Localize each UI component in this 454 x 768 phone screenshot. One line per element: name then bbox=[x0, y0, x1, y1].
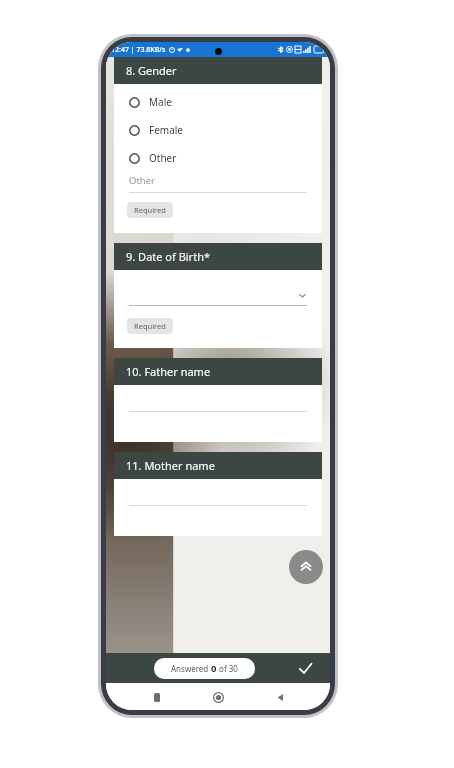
button[interactable]: Submit bbox=[293, 656, 317, 680]
button[interactable]: Recents bbox=[146, 686, 168, 708]
button[interactable]: Other bbox=[129, 151, 322, 165]
staticText: Required bbox=[134, 321, 166, 331]
button[interactable]: 8. Gender bbox=[114, 57, 322, 233]
staticText: Female bbox=[149, 123, 184, 137]
button[interactable]: Required bbox=[127, 202, 173, 218]
staticText: 0 bbox=[211, 662, 217, 675]
button[interactable]: Required bbox=[127, 318, 173, 334]
staticText: 10. Father name bbox=[126, 364, 211, 379]
button[interactable]: Back bbox=[269, 686, 291, 708]
staticText: 9. Date of Birth* bbox=[126, 249, 210, 264]
staticText: Other bbox=[129, 174, 156, 187]
button[interactable]: Answered bbox=[154, 658, 255, 679]
button[interactable]: 10. Father name bbox=[114, 358, 322, 442]
button[interactable]: 11. Mother name bbox=[114, 452, 322, 536]
staticText: 12:47 | 73.8KB/s bbox=[111, 45, 166, 55]
button[interactable]: Female bbox=[129, 123, 322, 137]
button[interactable]: 9. Date of Birth* bbox=[114, 243, 322, 348]
staticText: 11. Mother name bbox=[126, 458, 215, 473]
staticText: 8. Gender bbox=[126, 63, 177, 78]
button[interactable]: Home bbox=[207, 686, 229, 708]
staticText: Answered bbox=[171, 663, 211, 674]
staticText: Male bbox=[149, 95, 172, 109]
staticText: Other bbox=[149, 151, 177, 165]
staticText: Required bbox=[134, 205, 166, 215]
button[interactable]: Scroll to top bbox=[289, 550, 323, 584]
button[interactable]: Male bbox=[129, 95, 322, 109]
staticText: of 30 bbox=[217, 663, 238, 674]
